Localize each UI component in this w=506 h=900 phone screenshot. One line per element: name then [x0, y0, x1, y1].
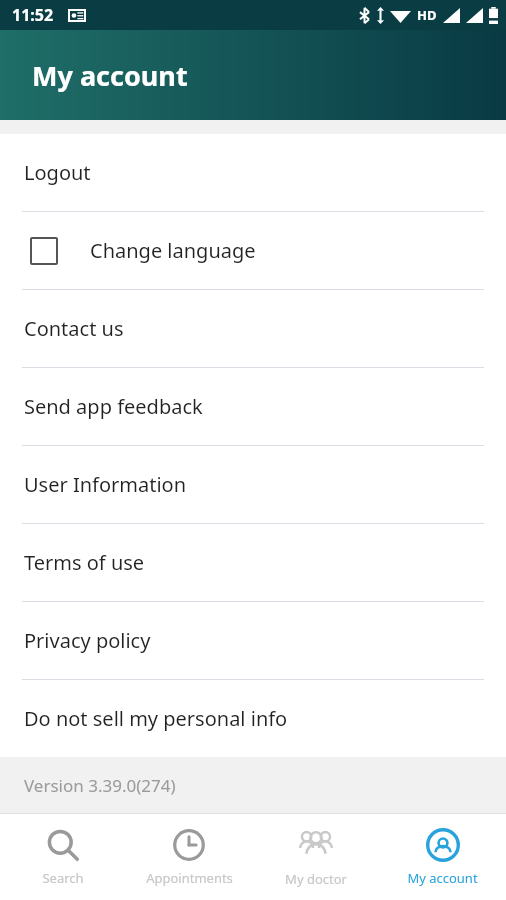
button[interactable]: Contact us — [0, 290, 506, 367]
other: My doctor — [298, 827, 334, 863]
button[interactable]: User Information — [0, 446, 506, 523]
button[interactable]: Logout — [0, 134, 506, 211]
staticText: HD — [417, 6, 437, 24]
button[interactable]: My doctor — [252, 814, 379, 900]
staticText: Terms of use — [24, 549, 145, 576]
staticText: Change language — [90, 237, 256, 264]
staticText: Contact us — [24, 315, 124, 342]
staticText: My account — [407, 869, 478, 887]
staticText: Logout — [24, 159, 91, 186]
button[interactable]: Change language — [0, 212, 506, 289]
staticText: Version 3.39.0(274) — [24, 774, 176, 797]
staticText: Appointments — [146, 869, 233, 887]
other: Appointments — [172, 828, 206, 862]
button[interactable]: Terms of use — [0, 524, 506, 601]
staticText: Send app feedback — [24, 393, 203, 420]
button[interactable]: My account — [379, 814, 506, 900]
button[interactable]: Do not sell my personal info — [0, 680, 506, 757]
staticText: My doctor — [285, 870, 347, 888]
button[interactable]: Search — [0, 814, 126, 900]
button[interactable]: Privacy policy — [0, 602, 506, 679]
staticText: 11:52 — [12, 4, 54, 26]
staticText: User Information — [24, 471, 187, 498]
other: My account — [426, 828, 460, 862]
staticText: My account — [32, 57, 188, 94]
button[interactable]: Appointments — [126, 814, 252, 900]
staticText: Privacy policy — [24, 627, 151, 654]
button[interactable]: Send app feedback — [0, 368, 506, 445]
other: Search — [46, 828, 80, 862]
staticText: Search — [42, 869, 84, 887]
staticText: Do not sell my personal info — [24, 705, 288, 732]
